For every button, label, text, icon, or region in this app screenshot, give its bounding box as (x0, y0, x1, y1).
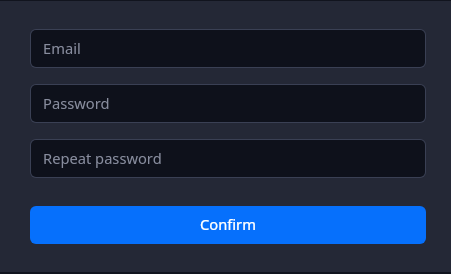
staticText: Repeat password (43, 148, 162, 168)
button[interactable]: Repeat password (30, 139, 426, 178)
staticText: Confirm (200, 214, 256, 234)
staticText: Email (43, 38, 81, 58)
button[interactable]: Confirm (30, 206, 426, 244)
button[interactable]: Email (30, 29, 426, 68)
button[interactable]: Password (30, 84, 426, 123)
staticText: Password (43, 93, 110, 113)
